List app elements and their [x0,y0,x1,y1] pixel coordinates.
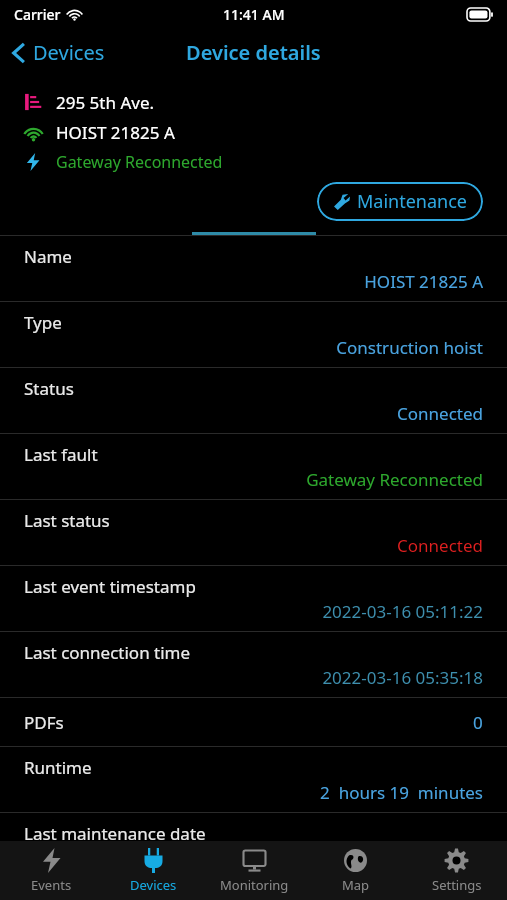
button[interactable]: Last connection time [0,632,507,697]
staticText: 11:41 AM [223,5,285,24]
staticText [24,847,483,870]
staticText: Connected [24,534,483,557]
staticText: Name [24,245,72,268]
staticText: Last fault [24,443,98,466]
button[interactable]: Status [0,368,507,433]
staticText: Monitoring [220,876,289,894]
staticText: Settings [432,876,482,894]
button[interactable]: Last maintenance date [0,813,507,878]
staticText: Last event timestamp [24,575,196,598]
button[interactable]: Last fault [0,434,507,499]
staticText: Devices [33,39,105,66]
button[interactable]: Last event timestamp [0,566,507,631]
button[interactable]: Settings [406,841,507,900]
staticText: Gateway Reconnected [24,468,483,491]
staticText: Type [24,311,62,334]
staticText: Gateway Reconnected [56,151,223,173]
button[interactable]: Maintenance [317,182,483,221]
staticText: Status [24,377,74,400]
staticText: HOIST 21825 A [24,270,483,293]
button[interactable]: Runtime [0,747,507,812]
staticText: 2 hours 19 minutes [24,781,483,804]
staticText: Last maintenance date [24,822,206,845]
button[interactable]: Last status [0,500,507,565]
button[interactable]: Devices [0,35,115,70]
staticText: Runtime [24,756,92,779]
staticText: 295 5th Ave. [56,91,155,114]
staticText: 2022-03-16 05:35:18 [24,666,483,689]
staticText: 0 [473,711,483,734]
staticText: Devices [130,876,177,894]
staticText: Last connection time [24,641,191,664]
staticText: 2022-03-16 05:11:22 [24,600,483,623]
staticText: Last status [24,509,110,532]
button[interactable]: Monitoring [204,841,305,900]
button[interactable]: Type [0,302,507,367]
staticText: Connected [24,402,483,425]
staticText: Map [342,876,370,894]
staticText: Maintenance [357,189,467,214]
button[interactable]: Events [0,841,102,900]
staticText: HOIST 21825 A [56,121,175,144]
staticText: Carrier [14,5,61,24]
button[interactable]: Name [0,236,507,301]
staticText: Construction hoist [24,336,483,359]
staticText: PDFs [24,711,64,734]
button[interactable]: Devices [102,841,204,900]
staticText: Device details [186,39,321,66]
button[interactable]: PDFs [0,698,507,746]
staticText: Events [31,876,72,894]
button[interactable]: Map [305,841,406,900]
